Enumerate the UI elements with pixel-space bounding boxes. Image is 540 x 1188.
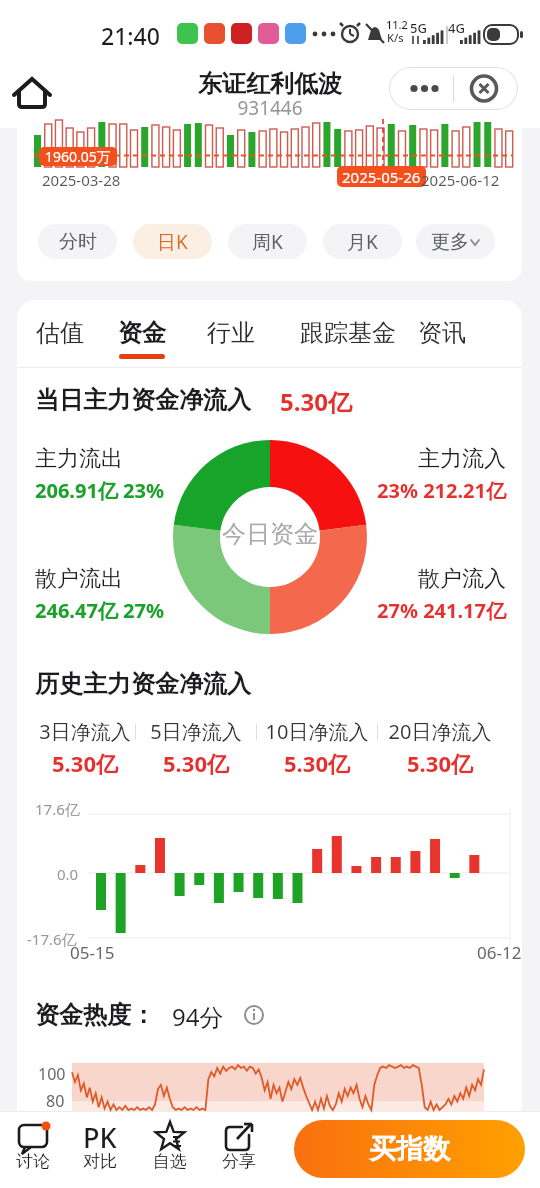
staticText: 月K: [347, 229, 378, 255]
button[interactable]: 买指数: [294, 1120, 525, 1178]
staticText: 27% 241.17亿: [306, 597, 506, 624]
staticText: 估值: [36, 318, 84, 348]
button[interactable]: 月K: [323, 224, 402, 259]
staticText: 246.47亿 27%: [35, 597, 164, 624]
staticText: 散户流入: [306, 565, 506, 593]
staticText: 10日净流入: [257, 718, 377, 745]
button[interactable]: [212, 1118, 268, 1180]
staticText: 对比: [83, 1151, 117, 1172]
staticText: 历史主力资金净流入: [35, 669, 251, 699]
staticText: 206.91亿 23%: [35, 477, 164, 504]
button[interactable]: [10, 72, 54, 116]
staticText: 今日资金: [170, 519, 370, 549]
staticText: 06-12: [477, 941, 522, 964]
staticText: 周K: [252, 229, 283, 255]
staticText: 94分: [172, 1000, 224, 1033]
staticText: PK: [83, 1119, 117, 1156]
button[interactable]: 行业: [205, 315, 257, 351]
staticText: 17.6亿: [35, 799, 80, 819]
staticText: 23% 212.21亿: [306, 477, 506, 504]
button[interactable]: [454, 67, 518, 110]
staticText: 更多: [431, 230, 469, 254]
staticText: 分时: [59, 230, 97, 254]
button[interactable]: 周K: [228, 224, 307, 259]
staticText: 分享: [222, 1151, 256, 1172]
staticText: 散户流出: [35, 565, 123, 593]
staticText: 20日净流入: [380, 718, 500, 745]
button[interactable]: 分时: [38, 224, 117, 259]
staticText: 1960.05万: [45, 147, 111, 166]
staticText: 自选: [153, 1151, 187, 1172]
staticText: 931446: [170, 95, 370, 121]
staticText: 讨论: [16, 1151, 50, 1172]
staticText: 主力流入: [306, 445, 506, 473]
staticText: 5.30亿: [280, 385, 352, 418]
button[interactable]: [389, 67, 453, 110]
staticText: 5.30亿: [380, 748, 500, 778]
staticText: 5G: [410, 19, 427, 37]
staticText: 资讯: [418, 318, 466, 348]
staticText: 5.30亿: [257, 748, 377, 778]
button[interactable]: [142, 1118, 198, 1180]
staticText: 2025-03-28: [42, 170, 121, 190]
staticText: 2025-05-26: [342, 167, 421, 187]
staticText: 100: [38, 1063, 66, 1085]
staticText: 日K: [157, 229, 188, 255]
staticText: 3日净流入: [25, 718, 145, 745]
staticText: 当日主力资金净流入: [35, 385, 251, 415]
staticText: 4G: [448, 19, 465, 37]
button[interactable]: 资讯: [417, 315, 466, 351]
button[interactable]: 资金: [116, 315, 168, 351]
staticText: 0.0: [57, 864, 79, 884]
staticText: 5日净流入: [136, 718, 256, 745]
staticText: 11.2: [386, 17, 408, 32]
staticText: 买指数: [369, 1132, 450, 1166]
button[interactable]: [8, 1118, 64, 1180]
staticText: 5.30亿: [25, 748, 145, 778]
staticText: 资金热度：: [35, 1000, 155, 1030]
button[interactable]: 更多: [416, 224, 495, 259]
button[interactable]: [72, 1118, 128, 1180]
button[interactable]: 跟踪基金: [297, 315, 398, 351]
button[interactable]: 日K: [133, 224, 212, 259]
staticText: 21:40: [101, 20, 160, 51]
staticText: 05-15: [70, 941, 115, 964]
staticText: 跟踪基金: [300, 318, 396, 348]
staticText: 资金: [118, 318, 166, 348]
staticText: 2025-06-12: [421, 170, 500, 190]
staticText: K/s: [387, 30, 404, 45]
staticText: 东证红利低波: [170, 69, 370, 99]
staticText: -17.6亿: [27, 929, 77, 949]
button[interactable]: 估值: [36, 315, 84, 351]
staticText: 80: [46, 1090, 65, 1112]
staticText: 行业: [207, 318, 255, 348]
staticText: 主力流出: [35, 445, 123, 473]
staticText: 5.30亿: [136, 748, 256, 778]
